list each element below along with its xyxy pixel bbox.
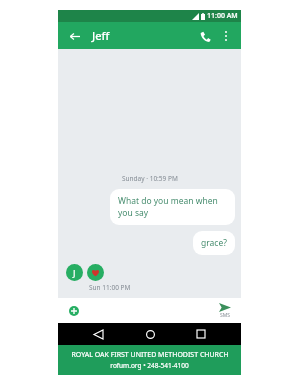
staticText: What do you mean when you say — [118, 195, 227, 219]
staticText: Sunday · 10:59 PM — [122, 174, 178, 183]
button[interactable]: Recent apps — [190, 323, 212, 345]
button[interactable]: Call — [196, 27, 214, 45]
button[interactable]: Send SMS — [217, 301, 233, 321]
button[interactable]: Back — [65, 27, 83, 45]
button[interactable]: Jeff avatar — [66, 264, 83, 281]
button[interactable]: Back — [87, 323, 109, 345]
staticText: SMS — [220, 312, 231, 319]
staticText: J — [73, 267, 76, 279]
staticText: 11:00 AM — [207, 11, 238, 21]
staticText: rofum.org • 248-541-4100 — [110, 361, 189, 370]
staticText: ROYAL OAK FIRST UNITED METHODIST CHURCH — [71, 350, 229, 360]
button[interactable]: What do you mean when you say — [110, 189, 235, 225]
button[interactable]: ROYAL OAK FIRST UNITED METHODIST CHURCH — [58, 345, 241, 375]
staticText: grace? — [201, 237, 227, 249]
button[interactable]: Attach — [66, 303, 82, 319]
staticText: Jeff — [92, 28, 196, 43]
button[interactable]: More options — [218, 28, 234, 44]
button[interactable]: Home — [139, 323, 161, 345]
button[interactable]: Heart reaction — [87, 264, 104, 281]
button[interactable]: grace? — [193, 231, 235, 255]
staticText: Sun 11:00 PM — [89, 283, 131, 292]
